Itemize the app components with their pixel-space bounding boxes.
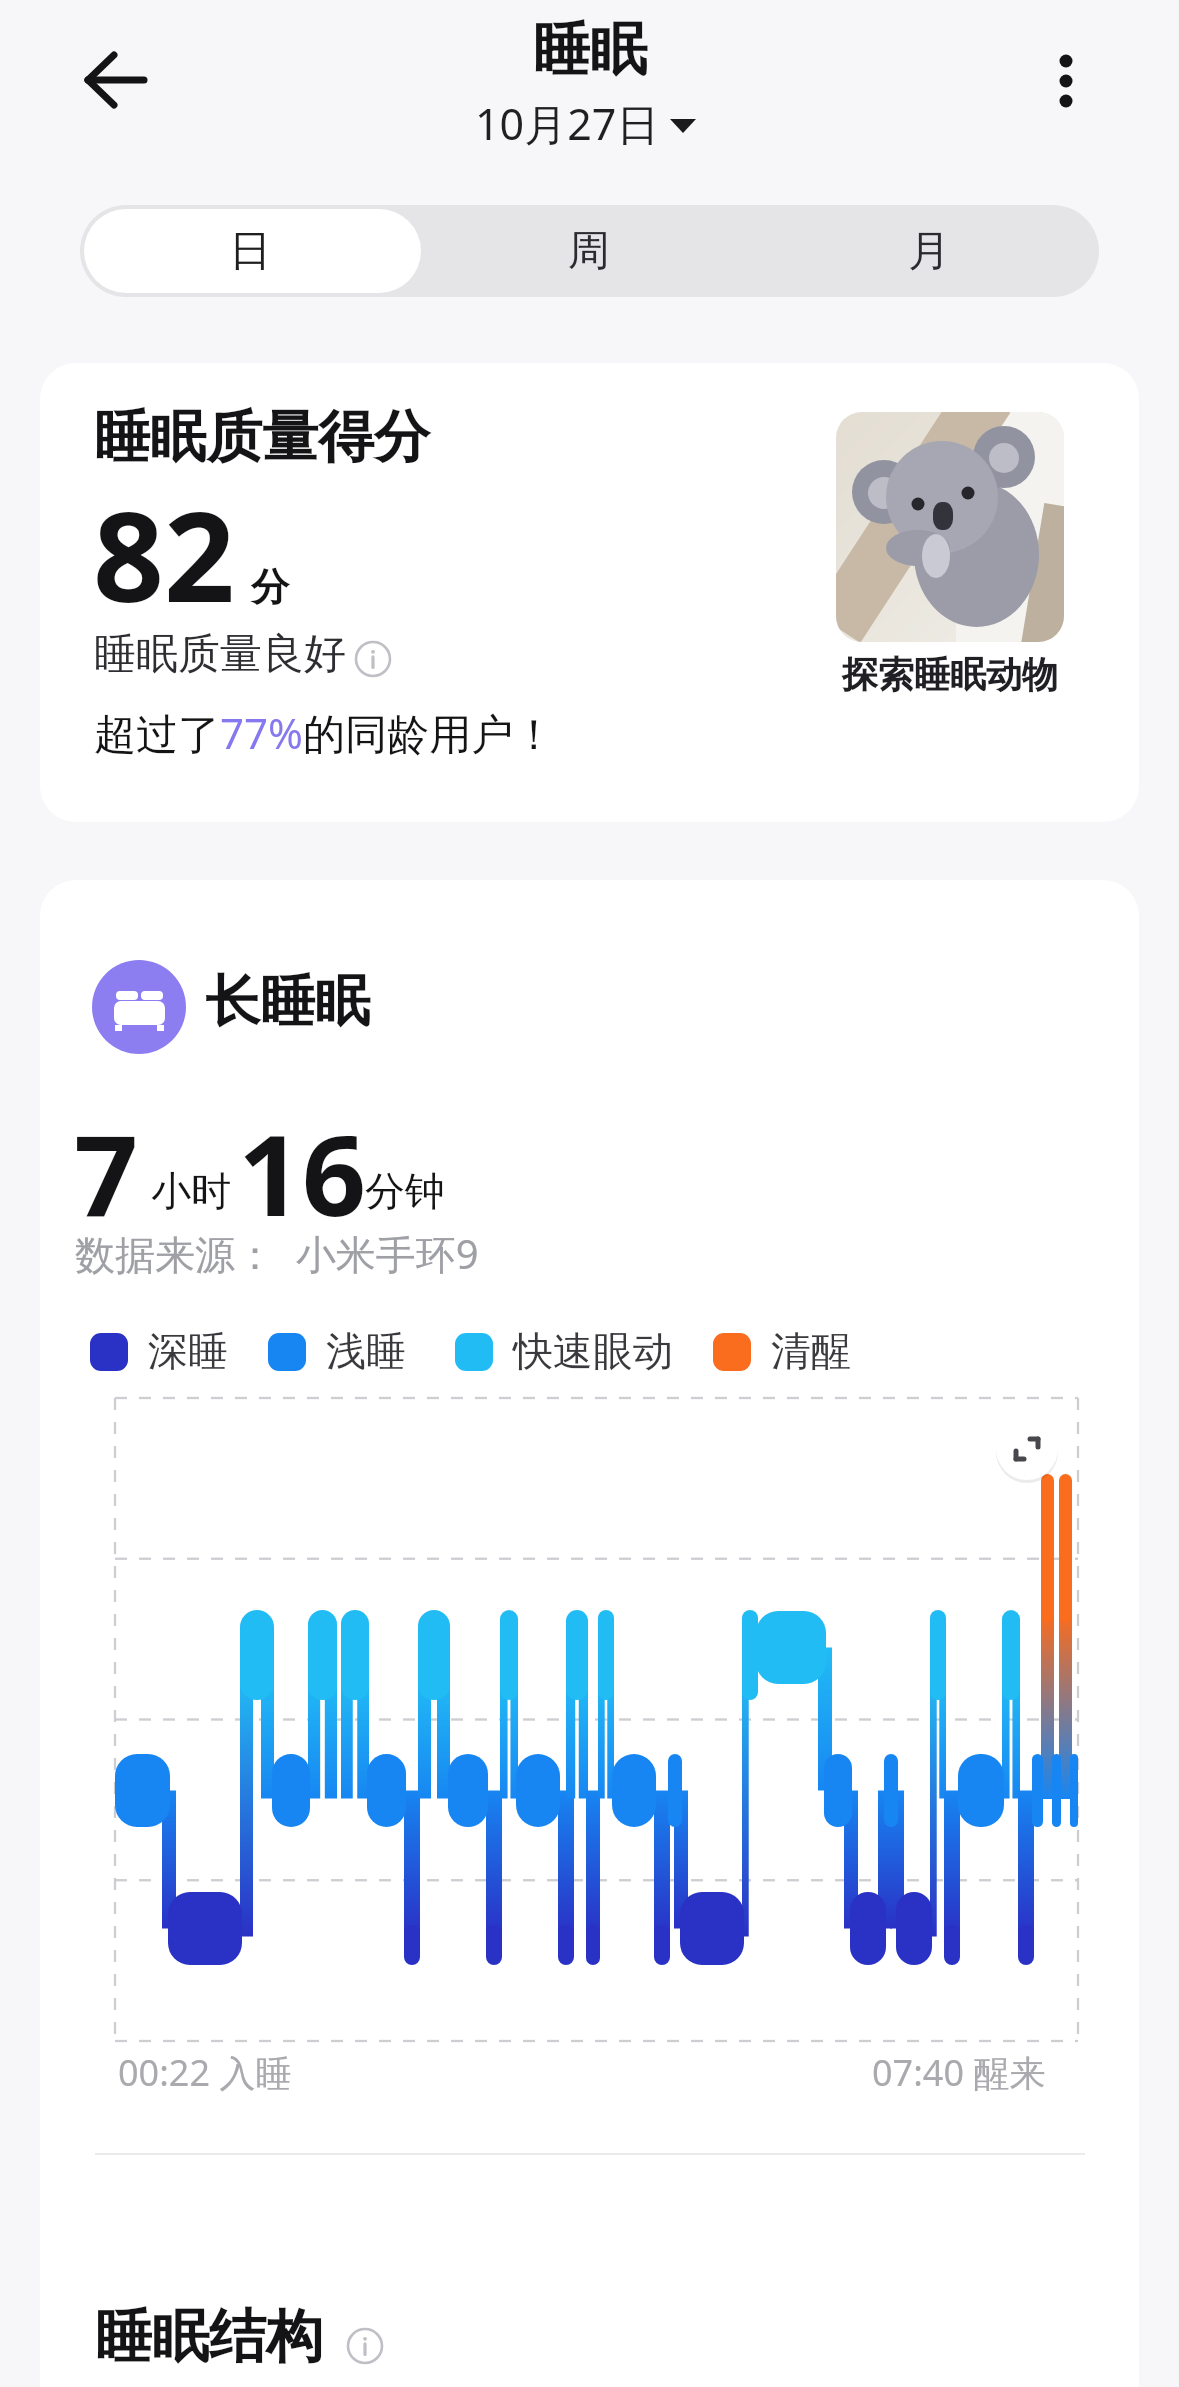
staticText: 10月27日: [475, 94, 660, 153]
staticText: 分: [251, 563, 289, 611]
staticText: 分钟: [365, 1166, 445, 1216]
staticText: 睡眠: [533, 14, 647, 86]
staticText: 数据来源： 小米手环9: [75, 1226, 479, 1281]
button[interactable]: 周: [419, 205, 759, 297]
staticText: 快速眼动: [513, 1326, 673, 1376]
button[interactable]: [1034, 44, 1100, 120]
staticText: 清醒: [771, 1326, 851, 1376]
staticText: 82: [93, 469, 235, 638]
button[interactable]: 睡眠质量得分: [40, 363, 1139, 822]
staticText: 睡眠质量得分: [94, 402, 430, 473]
button[interactable]: [996, 1418, 1058, 1480]
staticText: 超过了77%的同龄用户！: [94, 704, 555, 761]
staticText: 周: [568, 225, 610, 278]
button[interactable]: 日: [80, 205, 419, 297]
button[interactable]: [76, 44, 156, 116]
staticText: 00:22 入睡: [118, 2048, 292, 2097]
staticText: 浅睡: [326, 1326, 406, 1376]
staticText: 深睡: [148, 1326, 228, 1376]
button[interactable]: 10月27日: [475, 94, 696, 153]
staticText: 07:40 醒来: [872, 2048, 1046, 2097]
staticText: 长睡眠: [205, 967, 370, 1036]
button[interactable]: 探索睡眠动物: [823, 397, 1076, 713]
staticText: 睡眠质量良好: [94, 628, 346, 681]
staticText: 睡眠结构: [95, 2301, 323, 2373]
staticText: 小时: [151, 1166, 231, 1216]
staticText: 日: [229, 225, 271, 278]
staticText: 探索睡眠动物: [842, 652, 1058, 697]
staticText: 月: [908, 225, 950, 278]
button[interactable]: 月: [759, 205, 1099, 297]
staticText: 16: [238, 1096, 367, 1249]
staticText: 7: [74, 1096, 139, 1249]
